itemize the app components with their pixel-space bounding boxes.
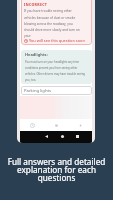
button[interactable]: Favourites [44, 119, 68, 131]
staticText: If you have trouble seeing other vehicle… [24, 9, 80, 38]
button[interactable]: Next question [68, 119, 92, 131]
button[interactable]: Headlights: [21, 50, 92, 84]
staticText: You must turn on your headlights any tim… [25, 60, 85, 81]
staticText: INCORRECT [24, 2, 48, 7]
button[interactable]: Progress [20, 119, 44, 131]
staticText: Parking lights [24, 88, 52, 94]
button[interactable]: Parking lights [21, 86, 92, 95]
staticText: Full answers and detailed explanation fo… [4, 156, 109, 184]
staticText: You will see this question soon [29, 38, 85, 43]
button[interactable]: INCORRECT [21, 0, 92, 45]
staticText: Headlights: [25, 52, 48, 57]
